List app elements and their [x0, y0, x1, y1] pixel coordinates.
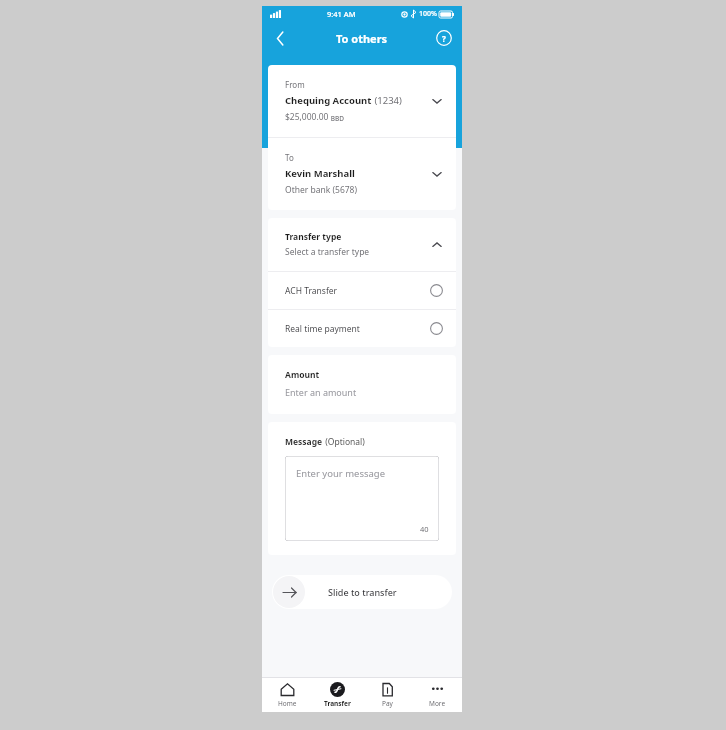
staticText: Message	[285, 436, 323, 448]
button[interactable]: More	[412, 678, 462, 712]
staticText: Transfer type	[285, 231, 342, 243]
button[interactable]: Transfer type	[268, 218, 456, 271]
button[interactable]: Back	[267, 25, 293, 51]
button[interactable]: Enter your message	[285, 456, 439, 541]
button[interactable]: Help	[432, 26, 456, 50]
staticText: More	[429, 699, 446, 708]
staticText: (1234)	[372, 94, 402, 107]
staticText: 100%	[419, 9, 437, 19]
staticText: Transfer	[324, 699, 351, 708]
staticText: Pay	[382, 699, 393, 708]
staticText: $25,000.00	[285, 111, 329, 123]
button[interactable]: From	[268, 65, 456, 137]
button[interactable]: Pay	[362, 678, 412, 712]
staticText: (Optional)	[323, 436, 365, 448]
staticText: Home	[278, 699, 297, 708]
button[interactable]: ACH Transfer	[268, 272, 456, 309]
staticText: To	[285, 152, 294, 163]
staticText: From	[285, 79, 305, 90]
staticText: Select a transfer type	[285, 246, 370, 258]
button[interactable]: Amount	[268, 355, 456, 414]
button[interactable]: Slide to transfer	[272, 575, 452, 609]
staticText: 40	[420, 524, 429, 534]
button[interactable]: Home	[262, 678, 312, 712]
staticText: ACH Transfer	[285, 285, 430, 297]
staticText: Amount	[285, 369, 320, 381]
staticText: Chequing Account	[285, 94, 372, 107]
staticText: To others	[336, 31, 388, 46]
staticText: Real time payment	[285, 323, 430, 335]
staticText: Other bank (5678)	[285, 184, 358, 196]
staticText: Enter your message	[296, 467, 386, 480]
staticText: 9:41 AM	[327, 9, 356, 19]
button[interactable]: Transfer	[312, 678, 362, 712]
button[interactable]: Real time payment	[268, 310, 456, 347]
button[interactable]: To	[268, 138, 456, 210]
staticText: Enter an amount	[285, 386, 357, 398]
staticText: Kevin Marshall	[285, 167, 355, 180]
staticText: Slide to transfer	[328, 586, 397, 598]
staticText: BBD	[329, 114, 344, 123]
staticText: ?	[442, 33, 446, 44]
